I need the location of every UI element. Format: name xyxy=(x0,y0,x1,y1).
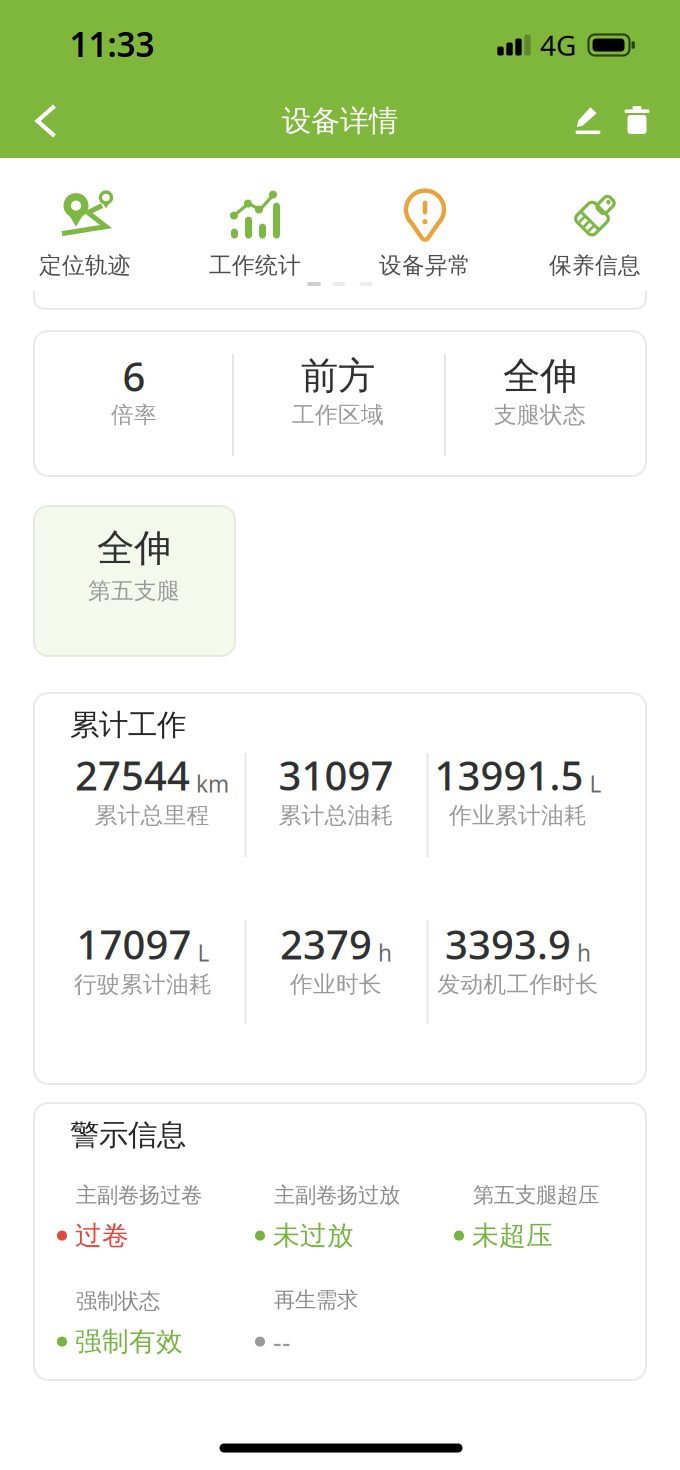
staticText: 第五支腿 xyxy=(88,577,180,605)
staticText: 31097 xyxy=(278,748,393,802)
staticText: 设备异常 xyxy=(379,252,471,279)
staticText: 作业累计油耗 xyxy=(449,802,587,829)
staticText: 全伸 xyxy=(97,525,171,571)
staticText: h xyxy=(378,937,392,968)
staticText: 强制有效 xyxy=(75,1325,183,1358)
staticText: L xyxy=(197,937,209,968)
staticText: 保养信息 xyxy=(549,252,641,279)
staticText: 未过放 xyxy=(273,1219,354,1252)
button[interactable]: Edit xyxy=(569,100,606,140)
button[interactable]: 保养信息 xyxy=(512,183,678,287)
button[interactable]: 工作统计 xyxy=(172,183,338,287)
staticText: km xyxy=(196,768,229,799)
staticText: 累计工作 xyxy=(70,707,186,743)
staticText: 工作区域 xyxy=(292,401,384,429)
staticText: 第五支腿超压 xyxy=(473,1182,599,1208)
staticText: 设备详情 xyxy=(282,103,398,139)
staticText: h xyxy=(577,937,591,968)
button[interactable]: Back xyxy=(19,96,72,146)
staticText: 6 xyxy=(122,349,145,402)
staticText: 强制状态 xyxy=(76,1288,160,1314)
staticText: 工作统计 xyxy=(209,252,301,279)
staticText: 27544 xyxy=(75,748,190,802)
staticText: 作业时长 xyxy=(290,971,382,998)
staticText: 主副卷扬过放 xyxy=(274,1182,400,1208)
staticText: 警示信息 xyxy=(70,1117,186,1153)
staticText: 支腿状态 xyxy=(494,401,586,429)
staticText: -- xyxy=(273,1324,291,1359)
staticText: 发动机工作时长 xyxy=(437,971,598,998)
staticText: 倍率 xyxy=(111,401,157,429)
staticText: 过卷 xyxy=(75,1219,129,1252)
staticText: 全伸 xyxy=(503,353,577,399)
staticText: 主副卷扬过卷 xyxy=(76,1182,202,1208)
button[interactable]: 定位轨迹 xyxy=(2,183,168,287)
staticText: 累计总油耗 xyxy=(278,802,393,829)
staticText: 17097 xyxy=(76,917,191,971)
staticText: 2379 xyxy=(280,917,372,971)
staticText: 再生需求 xyxy=(274,1287,358,1313)
staticText: 13991.5 xyxy=(434,748,583,802)
staticText: 累计总里程 xyxy=(94,802,209,829)
staticText: 前方 xyxy=(301,353,375,399)
staticText: 3393.9 xyxy=(445,917,571,971)
staticText: 11:33 xyxy=(69,22,154,66)
staticText: 定位轨迹 xyxy=(39,252,131,279)
staticText: 4G xyxy=(540,26,576,64)
staticText: L xyxy=(589,768,601,799)
button[interactable]: 设备异常 xyxy=(342,183,508,287)
staticText: 行驶累计油耗 xyxy=(74,971,212,998)
staticText: 未超压 xyxy=(472,1219,553,1252)
button[interactable]: Delete xyxy=(618,100,655,140)
